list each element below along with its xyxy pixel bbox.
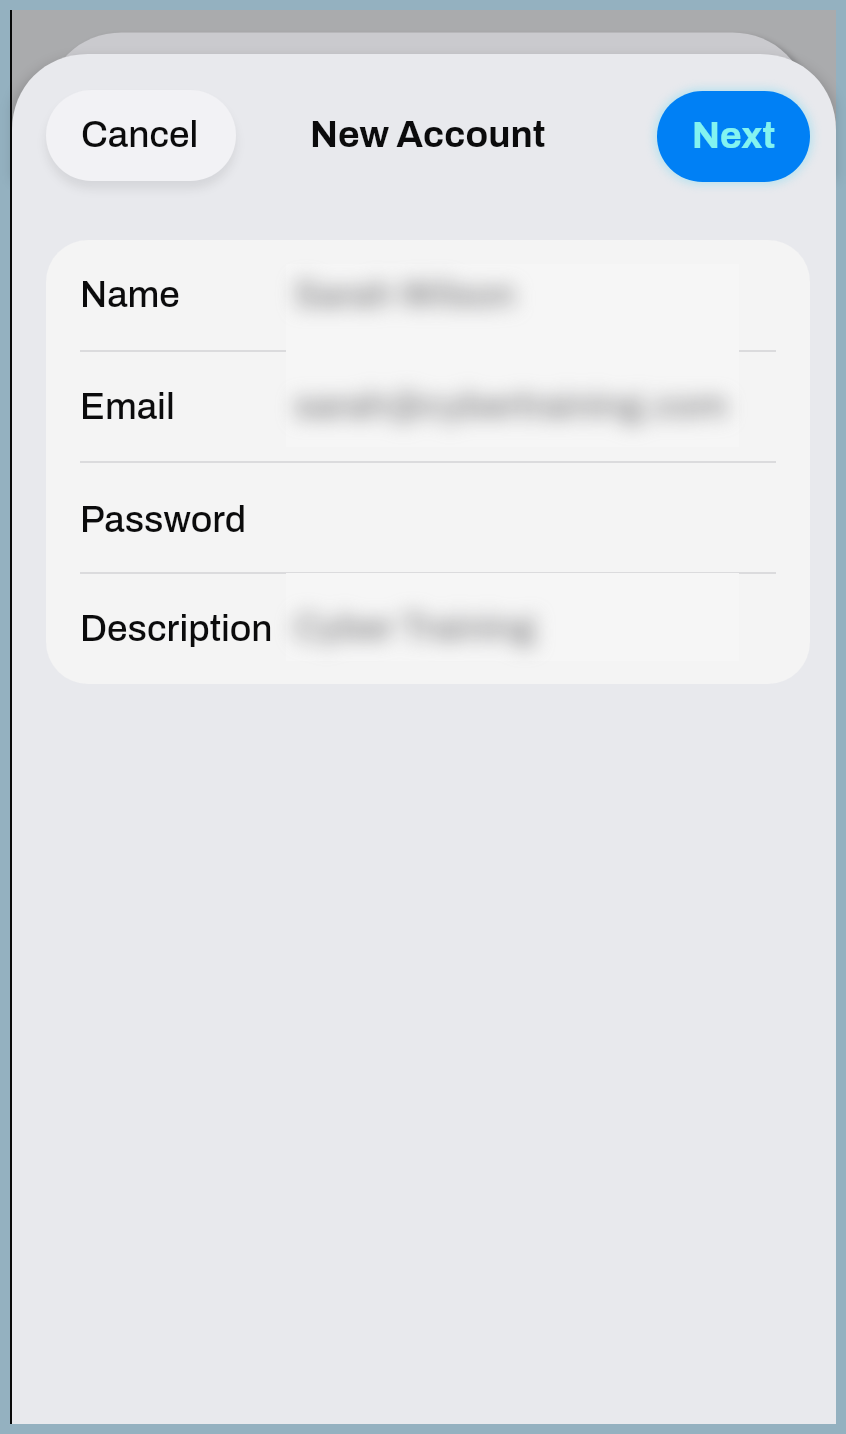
staticText: Sarah Wilson: [294, 275, 516, 315]
staticText: New Account: [310, 115, 546, 155]
button[interactable]: Cancel: [46, 90, 236, 181]
staticText: Name: [80, 275, 180, 315]
button[interactable]: Next: [657, 91, 810, 182]
button[interactable]: Email: [46, 352, 810, 463]
staticText: Cancel: [81, 115, 199, 155]
button[interactable]: Name: [46, 240, 810, 351]
button[interactable]: Password: [46, 465, 810, 576]
staticText: Next: [692, 116, 776, 156]
staticText: Description: [80, 609, 273, 649]
button[interactable]: Description: [46, 574, 810, 684]
staticText: sarah@cybertraining.com: [294, 386, 728, 426]
staticText: Email: [80, 387, 175, 427]
staticText: Cyber Training: [294, 608, 536, 648]
staticText: Password: [80, 500, 247, 540]
